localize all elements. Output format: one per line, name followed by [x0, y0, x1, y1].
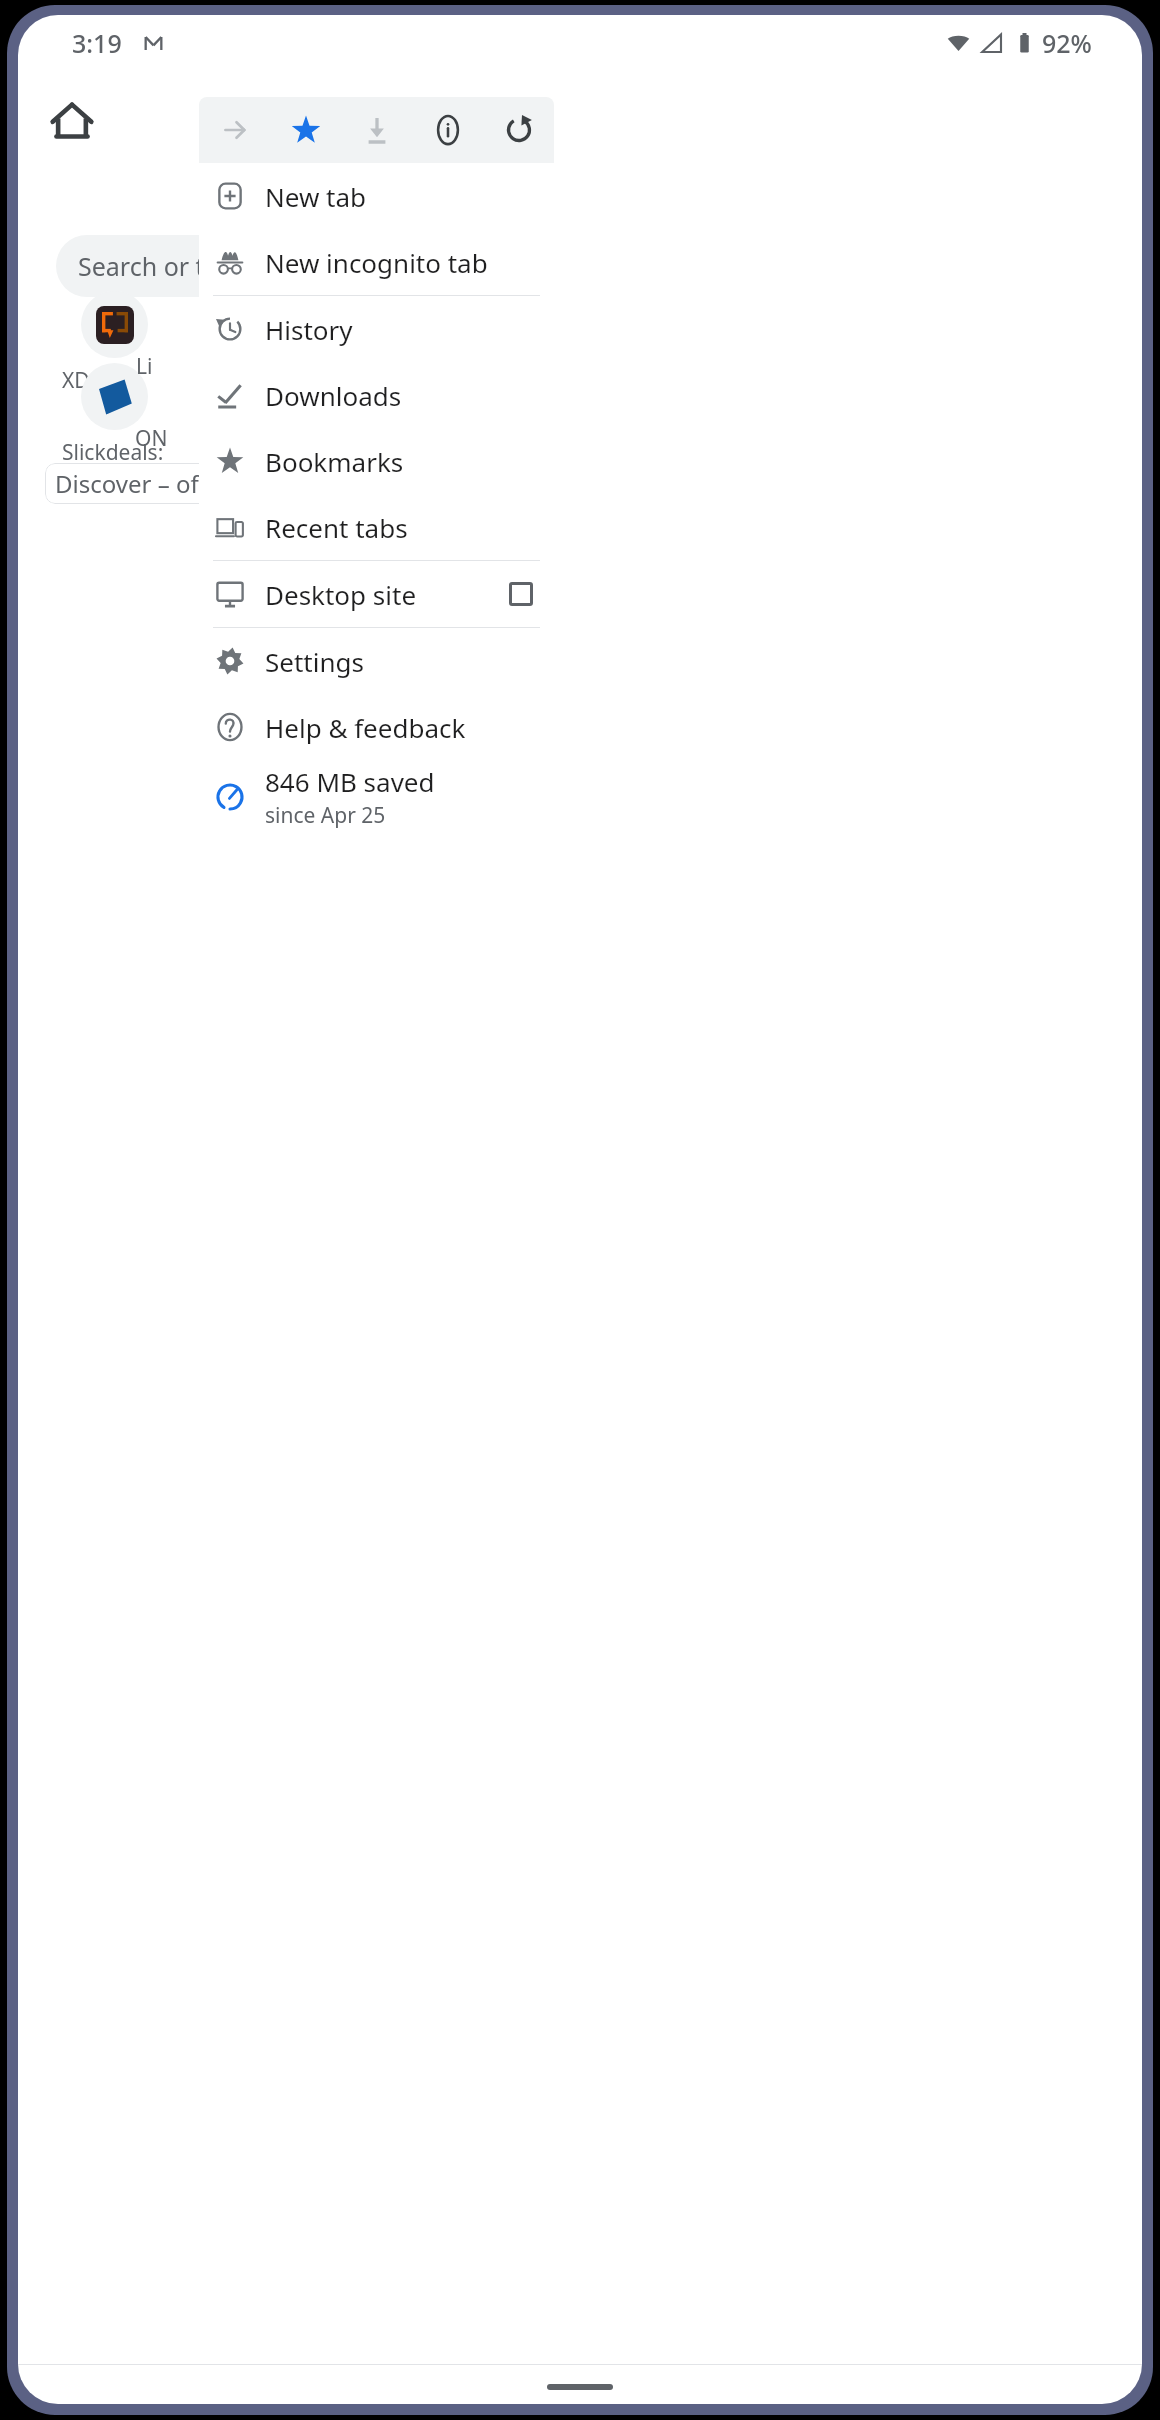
staticText: 92% [1042, 26, 1092, 60]
staticText: Desktop site [265, 577, 417, 612]
button[interactable]: Bookmark [270, 97, 341, 163]
button[interactable]: Bookmarks [199, 428, 554, 494]
button[interactable]: New incognito tab [199, 229, 554, 295]
button[interactable]: New tab [199, 163, 554, 229]
staticText: New tab [265, 179, 367, 214]
button[interactable]: Reload [483, 97, 554, 163]
button[interactable]: XDA-Develo… [62, 291, 166, 395]
button[interactable]: Home [38, 87, 106, 155]
button[interactable]: Download page [341, 97, 412, 163]
staticText: Bookmarks [265, 444, 404, 479]
button[interactable]: Settings [199, 628, 554, 694]
staticText: Settings [265, 644, 364, 679]
staticText: ON [135, 424, 168, 453]
button[interactable]: Desktop site [199, 561, 554, 627]
staticText: Help & feedback [265, 710, 466, 745]
button[interactable]: Discover – off [45, 463, 295, 504]
button[interactable]: 846 MB saved [199, 760, 554, 834]
staticText: New incognito tab [265, 245, 488, 280]
button[interactable]: Forward [199, 97, 270, 163]
button[interactable]: Slickdeals: … [62, 363, 166, 467]
staticText: Discover – off [55, 467, 207, 500]
staticText: Downloads [265, 378, 402, 413]
staticText: XDA-Develo… [62, 366, 166, 395]
staticText: Search or type [78, 249, 247, 283]
staticText: History [265, 312, 353, 347]
staticText: Li [136, 352, 153, 381]
staticText: since Apr 25 [265, 801, 386, 830]
button[interactable]: Page info [412, 97, 483, 163]
staticText: 3:19 [72, 26, 122, 60]
staticText: Recent tabs [265, 510, 408, 545]
staticText: Slickdeals: … [62, 438, 166, 467]
button[interactable]: Downloads [199, 362, 554, 428]
button[interactable]: History [199, 296, 554, 362]
button[interactable]: Help & feedback [199, 694, 554, 760]
button[interactable]: Recent tabs [199, 494, 554, 560]
staticText: 846 MB saved [265, 764, 435, 799]
button[interactable]: Search or type [56, 235, 366, 297]
